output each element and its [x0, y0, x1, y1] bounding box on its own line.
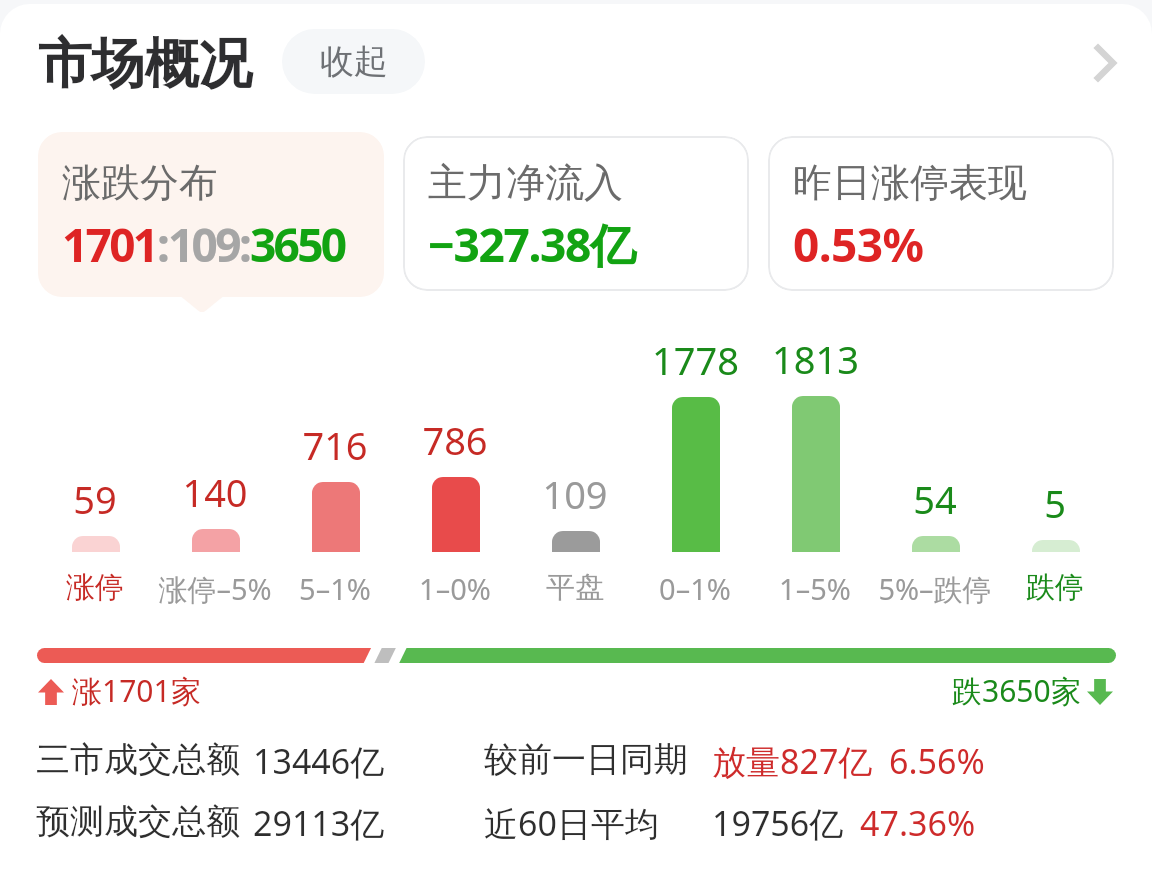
staticText: 1778 — [652, 334, 739, 386]
staticText: 放量827亿 — [712, 738, 873, 784]
button[interactable]: 涨跌分布 — [38, 132, 384, 297]
staticText: 涨停–5% — [158, 569, 272, 609]
staticText: 较前一日同期 — [484, 738, 688, 781]
staticText: 3650 — [250, 213, 345, 276]
staticText: : — [239, 213, 250, 276]
staticText: 6.56% — [889, 738, 985, 784]
staticText: 13446亿 — [253, 738, 385, 784]
staticText: 716 — [302, 419, 368, 471]
button[interactable]: 展开详情 — [1070, 29, 1138, 97]
staticText: 109 — [542, 468, 608, 520]
staticText: 涨停 — [66, 569, 124, 606]
button[interactable]: 主力净流入 — [403, 136, 749, 291]
staticText: 涨1701家 — [72, 670, 201, 711]
button[interactable] — [0, 4, 1152, 118]
staticText: 0.53% — [793, 213, 924, 276]
staticText: −327.38亿 — [428, 213, 635, 276]
button[interactable]: 昨日涨停表现 — [768, 136, 1114, 291]
staticText: 1–5% — [779, 569, 851, 608]
staticText: 54 — [913, 473, 957, 525]
staticText: 预测成交总额 — [36, 800, 240, 843]
staticText: 140 — [182, 466, 248, 518]
staticText: 5–1% — [299, 569, 371, 608]
staticText: 跌3650家 — [952, 670, 1081, 711]
staticText: 平盘 — [546, 569, 604, 606]
staticText: 0–1% — [659, 569, 731, 608]
staticText: 昨日涨停表现 — [793, 158, 1027, 207]
staticText: 主力净流入 — [428, 158, 623, 207]
staticText: 三市成交总额 — [36, 738, 240, 781]
staticText: 1–0% — [419, 569, 491, 608]
button[interactable]: 收起 — [282, 29, 425, 94]
staticText: 786 — [422, 414, 488, 466]
staticText: 收起 — [320, 40, 388, 83]
staticText: 59 — [73, 473, 117, 525]
staticText: 47.36% — [860, 800, 976, 846]
staticText: 29113亿 — [253, 800, 385, 846]
staticText: 近60日平均 — [484, 800, 659, 846]
staticText: 涨跌分布 — [62, 158, 218, 207]
staticText: 1701 — [62, 213, 157, 276]
staticText: 19756亿 — [712, 800, 844, 846]
staticText: 109 — [168, 213, 239, 276]
staticText: 5%–跌停 — [878, 569, 992, 609]
staticText: 市场概况 — [38, 30, 252, 97]
staticText: 5 — [1044, 477, 1066, 529]
staticText: 1813 — [772, 333, 859, 385]
staticText: : — [157, 213, 168, 276]
staticText: 跌停 — [1026, 569, 1084, 606]
